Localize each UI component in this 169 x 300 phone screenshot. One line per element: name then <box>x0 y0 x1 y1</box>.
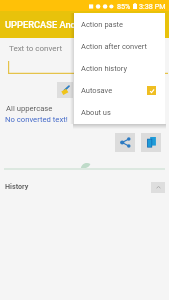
staticText: 3:38 PM <box>139 2 166 10</box>
button[interactable]: Action paste <box>74 13 165 35</box>
staticText: Action after convert <box>81 42 147 51</box>
staticText: Action paste <box>81 20 123 29</box>
staticText: Action history <box>81 64 128 73</box>
staticText: Text to convert <box>9 44 63 53</box>
staticText: UPPERCASE And <box>5 19 76 30</box>
staticText: History <box>5 182 29 190</box>
button[interactable]: Clear text <box>57 82 73 98</box>
staticText: No converted text! <box>5 115 68 124</box>
button[interactable]: Action after convert <box>74 35 165 57</box>
button[interactable]: About us <box>74 101 165 123</box>
button[interactable]: Action history <box>74 57 165 79</box>
button[interactable]: Autosave <box>74 79 165 101</box>
button[interactable]: Expand history <box>151 182 165 193</box>
staticText: Autosave <box>81 86 113 95</box>
staticText: All uppercase <box>6 104 53 113</box>
button[interactable]: Share <box>115 133 135 152</box>
staticText: About us <box>81 108 111 117</box>
button[interactable]: Copy <box>141 133 161 152</box>
staticText: 85% <box>117 2 131 10</box>
